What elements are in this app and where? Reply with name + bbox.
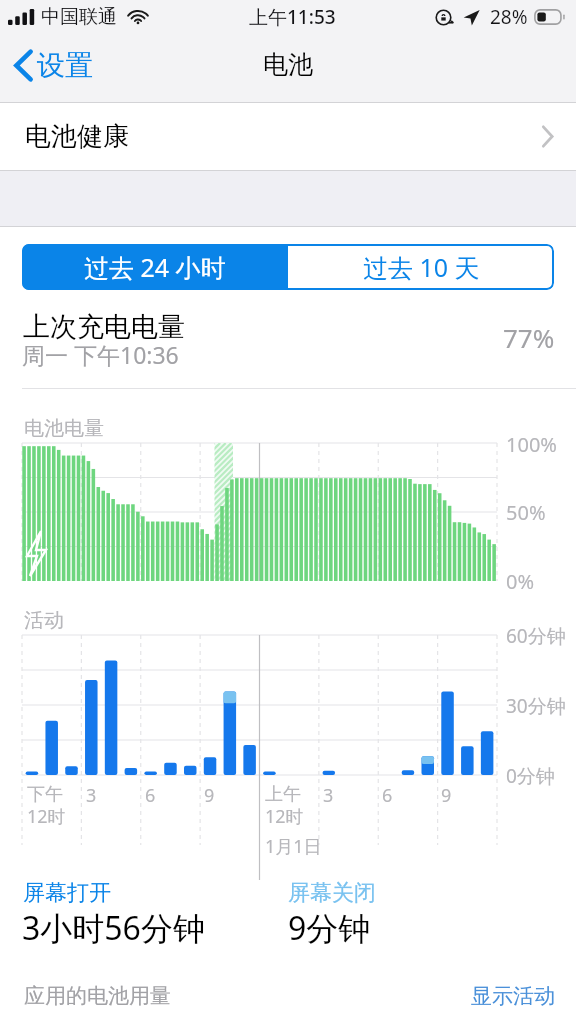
staticText: 过去 24 小时 [84,250,226,284]
button[interactable]: 过去 24 小时 [22,244,288,290]
staticText: 3 [323,783,334,808]
staticText: 6 [382,783,393,808]
staticText: 9分钟 [288,906,371,950]
staticText: 过去 10 天 [363,250,480,284]
staticText: 6 [145,783,156,808]
staticText: 60分钟 [506,623,566,649]
staticText: 周一 下午10:36 [22,339,179,370]
staticText: 3小时56分钟 [22,906,205,950]
staticText: 设置 [37,48,93,83]
staticText: 28% [490,4,528,30]
staticText: 屏幕打开 [23,879,111,907]
staticText: 电池 [263,49,313,80]
staticText: 上午 12时 [265,783,304,829]
staticText: 0% [506,568,535,595]
staticText: 下午 12时 [27,783,66,829]
staticText: 应用的电池用量 [24,983,171,1009]
staticText: 屏幕关闭 [288,879,376,907]
staticText: 活动 [24,608,64,633]
staticText: 50% [506,499,546,526]
staticText: 上次充电电量 [23,310,185,344]
staticText: 电池健康 [25,120,129,153]
staticText: 中国联通 [41,5,117,29]
staticText: 30分钟 [506,693,566,719]
staticText: 77% [503,320,555,355]
button[interactable]: 电池健康 [0,103,576,170]
staticText: 显示活动 [471,983,555,1009]
staticText: 100% [506,431,557,458]
staticText: 3 [86,783,97,808]
staticText: 9 [441,783,452,808]
staticText: 电池电量 [24,416,104,441]
button[interactable]: 显示活动 [471,983,555,1009]
staticText: 1月1日 [265,834,322,859]
staticText: 0分钟 [506,763,555,789]
staticText: 上午11:53 [249,4,336,30]
button[interactable]: 设置 [8,42,98,89]
staticText: 9 [204,783,215,808]
button[interactable]: 过去 10 天 [288,244,554,290]
